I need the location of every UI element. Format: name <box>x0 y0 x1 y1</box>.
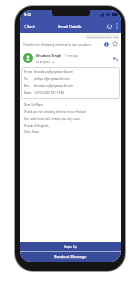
staticText: To: <box>24 77 34 81</box>
button[interactable]: Thanks for showing interest in our produ… <box>20 39 121 49</box>
staticText: Compose/Tap Words Sept <box>86 35 119 38</box>
staticText: Readout Message <box>54 254 87 259</box>
staticText: Thanks & Regards, <box>24 124 50 128</box>
button[interactable]: Khusboo Singh <box>20 49 121 67</box>
staticText: priflya.r@priyaworld.com <box>34 77 70 81</box>
staticText: khusboo.s@priyaworld.com <box>34 84 74 88</box>
button[interactable] <box>105 22 114 31</box>
staticText: Khusboo Singh <box>36 53 62 58</box>
staticText: Our sales team will contact you very soo… <box>24 117 82 121</box>
staticText: Thanks for showing interest in our produ… <box>23 42 104 47</box>
staticText: Dear Sir/Mam, <box>24 103 44 107</box>
staticText: 1 min ago <box>65 54 79 58</box>
button[interactable] <box>114 23 120 29</box>
button[interactable]: Swipe Up <box>20 242 121 262</box>
staticText: Bcc: <box>24 84 34 88</box>
staticText: Thank you for showing interest in our Pr… <box>24 110 87 114</box>
button[interactable] <box>112 56 117 61</box>
staticText: From: <box>24 70 34 74</box>
staticText: to priyasa <box>36 60 50 64</box>
staticText: Sales Team <box>24 130 40 134</box>
staticText: Date: <box>24 91 34 95</box>
button[interactable]: Back <box>20 24 35 29</box>
staticText: Email Details <box>58 24 82 29</box>
staticText: khusboo.s@priyaworld.com <box>34 70 74 74</box>
staticText: 10/10/2020 09:15 PM <box>34 91 64 95</box>
staticText: 9:12 <box>24 12 31 17</box>
staticText: Swipe Up <box>64 245 77 249</box>
staticText: Back <box>27 24 35 29</box>
